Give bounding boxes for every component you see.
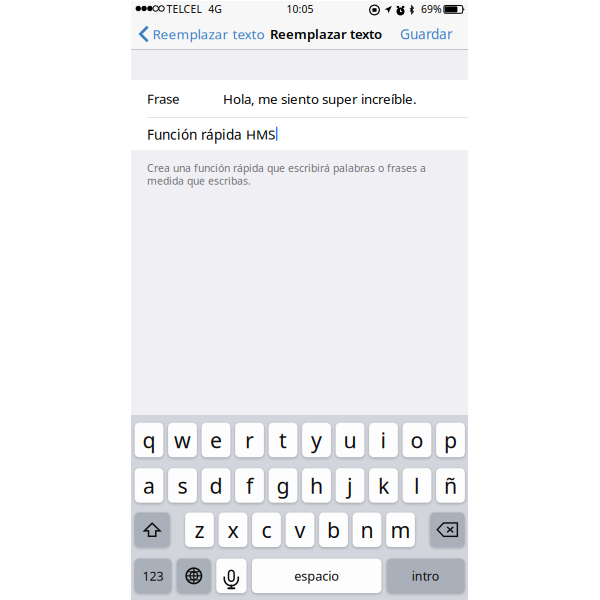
button[interactable]: f — [235, 468, 264, 503]
staticText: u — [343, 425, 356, 454]
staticText: k — [378, 471, 389, 500]
staticText: p — [444, 425, 457, 454]
staticText: intro — [412, 567, 440, 584]
button[interactable]: espacio — [252, 559, 381, 593]
staticText: c — [261, 515, 271, 544]
button[interactable]: Shift — [135, 512, 170, 547]
staticText: m — [390, 515, 410, 544]
button[interactable]: Función rápida — [131, 118, 468, 150]
button[interactable]: Next keyboard — [177, 559, 211, 593]
button[interactable]: k — [369, 468, 398, 503]
button[interactable]: d — [202, 468, 230, 503]
staticText: d — [209, 471, 222, 500]
staticText: Reemplazar texto — [152, 25, 264, 43]
button[interactable]: v — [286, 512, 314, 547]
button[interactable]: x — [219, 512, 247, 547]
staticText: a — [143, 471, 155, 500]
staticText: x — [227, 515, 238, 544]
button[interactable]: Frase — [131, 80, 468, 117]
staticText: j — [347, 471, 353, 500]
staticText: Frase — [147, 90, 179, 108]
staticText: 123 — [142, 567, 163, 584]
staticText: h — [310, 471, 323, 500]
button[interactable]: w — [168, 423, 197, 457]
button[interactable]: Reemplazar texto — [270, 18, 382, 50]
staticText: Hola, me siento super increíble. — [223, 90, 417, 108]
staticText: t — [279, 425, 287, 454]
staticText: r — [245, 425, 254, 454]
button[interactable]: o — [403, 423, 431, 457]
button[interactable]: c — [252, 512, 281, 547]
button[interactable]: Dictation — [216, 559, 246, 593]
staticText: b — [327, 515, 340, 544]
staticText: i — [380, 425, 386, 454]
staticText: y — [311, 425, 322, 454]
button[interactable]: a — [135, 468, 163, 503]
button[interactable]: y — [302, 423, 331, 457]
staticText: e — [210, 425, 222, 454]
staticText: z — [194, 515, 204, 544]
staticText: medida que escribas. — [147, 174, 251, 188]
staticText: o — [410, 425, 423, 454]
staticText: v — [294, 515, 305, 544]
staticText: HMS — [246, 125, 275, 143]
button[interactable]: u — [336, 423, 364, 457]
button[interactable]: b — [319, 512, 348, 547]
button[interactable]: z — [185, 512, 214, 547]
button[interactable]: n — [353, 512, 381, 547]
button[interactable]: intro — [387, 559, 465, 593]
button[interactable]: g — [269, 468, 297, 503]
staticText: 69% — [421, 2, 442, 16]
staticText: Reemplazar texto — [270, 25, 382, 43]
staticText: q — [142, 425, 155, 454]
button[interactable]: q — [135, 423, 163, 457]
button[interactable]: s — [168, 468, 197, 503]
button[interactable]: Delete — [430, 512, 465, 547]
button[interactable]: l — [403, 468, 431, 503]
staticText: TELCEL — [166, 2, 201, 16]
staticText: Guardar — [400, 25, 453, 43]
staticText: w — [174, 425, 191, 454]
staticText: f — [246, 471, 253, 500]
button[interactable]: i — [369, 423, 398, 457]
staticText: ñ — [444, 471, 457, 500]
button[interactable]: t — [269, 423, 297, 457]
staticText: l — [414, 471, 420, 500]
button[interactable]: 123 — [135, 559, 171, 593]
button[interactable]: r — [235, 423, 264, 457]
button[interactable]: ñ — [436, 468, 465, 503]
button[interactable]: Guardar — [392, 18, 461, 50]
button[interactable]: m — [386, 512, 415, 547]
button[interactable]: e — [202, 423, 230, 457]
staticText: n — [360, 515, 373, 544]
staticText: Crea una función rápida que escribirá pa… — [147, 161, 426, 175]
staticText: 10:05 — [286, 2, 313, 16]
button[interactable]: h — [302, 468, 331, 503]
staticText: s — [177, 471, 187, 500]
staticText: 4G — [208, 2, 222, 16]
staticText: Función rápida — [147, 125, 242, 144]
button[interactable]: p — [436, 423, 465, 457]
staticText: g — [276, 471, 289, 500]
staticText: espacio — [294, 567, 339, 584]
button[interactable]: j — [336, 468, 364, 503]
button[interactable]: Reemplazar texto — [131, 18, 270, 50]
